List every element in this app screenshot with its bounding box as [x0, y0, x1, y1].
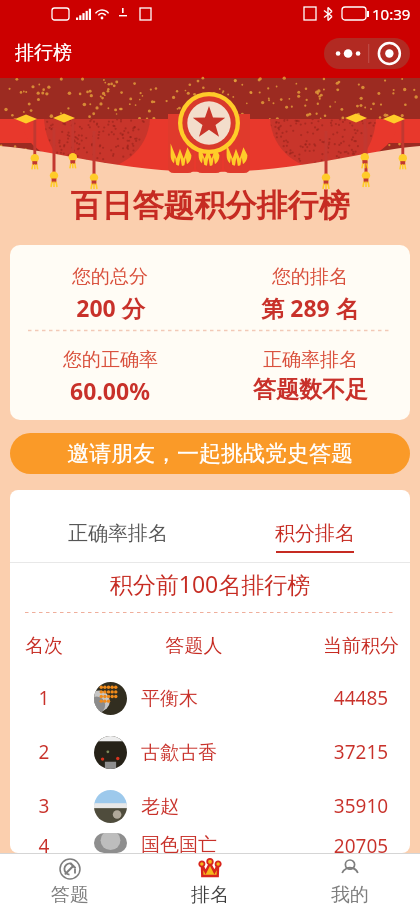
button[interactable]: 4 — [10, 833, 410, 853]
staticText: 您的正确率 — [63, 348, 158, 372]
staticText: 邀请朋友，一起挑战党史答题 — [67, 440, 353, 468]
staticText: 平衡木 — [141, 687, 198, 711]
staticText: 第 289 名 — [261, 292, 359, 323]
staticText: 37215 — [307, 739, 410, 765]
staticText: 百日答题积分排行榜 — [0, 186, 420, 225]
staticText: 4 — [10, 833, 78, 853]
staticText: 积分排名 — [275, 521, 355, 546]
button[interactable]: 邀请朋友，一起挑战党史答题 — [10, 433, 410, 474]
staticText: 答题数不足 — [253, 375, 368, 404]
staticText: 200 分 — [76, 292, 145, 323]
button[interactable]: 1 — [10, 671, 410, 725]
staticText: 3 — [10, 793, 78, 819]
staticText: 10:39 — [372, 4, 411, 24]
staticText: 您的排名 — [272, 265, 348, 289]
staticText: 当前积分 — [307, 634, 410, 658]
staticText: 答题 — [51, 883, 89, 907]
staticText: 古歙古香 — [141, 741, 217, 765]
staticText: 1 — [10, 685, 78, 711]
button[interactable]: Profile — [280, 854, 420, 910]
staticText: 20705 — [307, 833, 410, 853]
staticText: 60.00% — [70, 375, 150, 406]
button[interactable]: Ranking — [140, 854, 280, 910]
staticText: 答题人 — [144, 634, 244, 658]
staticText: 排名 — [191, 883, 229, 907]
staticText: 名次 — [10, 634, 78, 658]
staticText: 老赵 — [141, 795, 179, 819]
staticText: 积分前100名排行榜 — [10, 568, 410, 599]
staticText: 44485 — [307, 685, 410, 711]
button[interactable]: More options — [324, 38, 410, 69]
button[interactable]: 正确率排名 — [10, 490, 210, 563]
staticText: 您的总分 — [72, 265, 148, 289]
button[interactable]: Quiz — [0, 854, 140, 910]
staticText: 正确率排名 — [263, 348, 358, 372]
staticText: 我的 — [331, 883, 369, 907]
button[interactable]: 积分排名 — [210, 490, 410, 563]
button[interactable]: 2 — [10, 725, 410, 779]
staticText: 排行榜 — [15, 41, 72, 65]
staticText: 国色国亡 — [141, 833, 217, 853]
staticText: 35910 — [307, 793, 410, 819]
staticText: 2 — [10, 739, 78, 765]
staticText: 正确率排名 — [68, 521, 168, 546]
button[interactable]: 3 — [10, 779, 410, 833]
